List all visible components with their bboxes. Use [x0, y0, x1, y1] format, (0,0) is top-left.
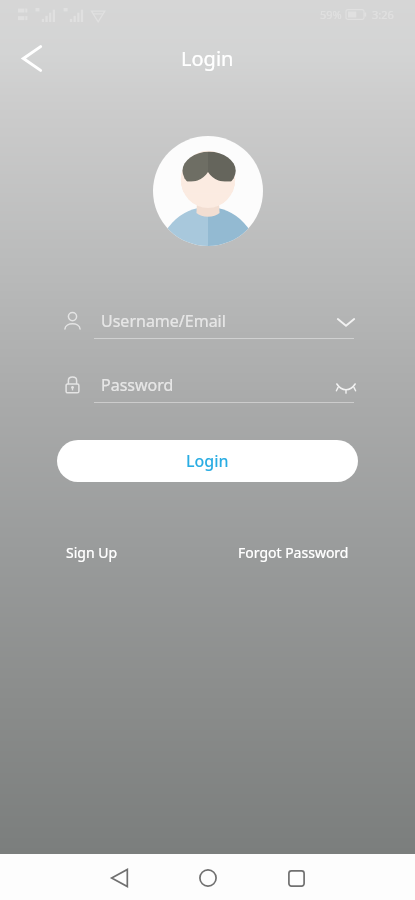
staticText: Sign Up — [66, 543, 118, 562]
staticText: Login — [181, 45, 234, 72]
staticText: 3:26 — [372, 7, 394, 22]
button[interactable]: Recent apps — [274, 856, 318, 900]
button[interactable]: Show password — [334, 373, 358, 397]
staticText: Password — [101, 374, 174, 396]
button[interactable]: Sign Up — [62, 539, 122, 566]
staticText: Login — [186, 450, 229, 472]
button[interactable]: Back — [97, 856, 141, 900]
staticText: 59% — [320, 7, 342, 22]
button[interactable]: Forgot Password — [234, 539, 353, 566]
staticText: Forgot Password — [238, 543, 349, 562]
button[interactable]: Login — [57, 440, 358, 482]
button[interactable]: Back — [8, 34, 56, 82]
button[interactable]: Home — [186, 856, 230, 900]
staticText: Username/Email — [101, 310, 226, 332]
button[interactable]: Choose account — [334, 309, 358, 333]
